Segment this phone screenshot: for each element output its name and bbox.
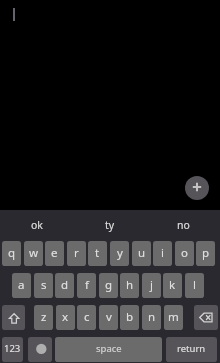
button[interactable]: ok (0, 210, 73, 241)
button[interactable]: o (175, 241, 194, 266)
staticText: x (62, 309, 69, 325)
button[interactable]: m (164, 305, 183, 330)
button[interactable]: Emoji (28, 337, 52, 362)
button[interactable]: e (45, 241, 64, 266)
staticText: i (161, 245, 164, 261)
staticText: ok (31, 218, 43, 232)
staticText: f (85, 277, 89, 293)
staticText: s (41, 277, 47, 293)
staticText: space (96, 342, 122, 355)
button[interactable]: y (110, 241, 129, 266)
button[interactable]: return (166, 337, 217, 362)
button[interactable]: Shift (2, 305, 25, 330)
button[interactable]: d (55, 273, 74, 298)
button[interactable]: q (2, 241, 21, 266)
button[interactable]: p (196, 241, 215, 266)
staticText: t (95, 245, 100, 261)
button[interactable]: j (142, 273, 161, 298)
staticText: u (138, 245, 146, 261)
button[interactable]: g (99, 273, 118, 298)
staticText: p (202, 245, 210, 261)
staticText: g (105, 277, 113, 293)
button[interactable]: no (147, 210, 220, 241)
staticText: ty (105, 218, 115, 232)
staticText: no (177, 218, 190, 232)
button[interactable]: f (77, 273, 96, 298)
button[interactable]: l (185, 273, 204, 298)
staticText: w (29, 245, 39, 261)
button[interactable]: s (34, 273, 53, 298)
staticText: c (84, 309, 90, 325)
staticText: z (41, 309, 47, 325)
button[interactable]: z (34, 305, 53, 330)
staticText: m (168, 309, 179, 325)
staticText: 123 (4, 342, 21, 355)
button[interactable]: i (153, 241, 172, 266)
button[interactable]: w (24, 241, 43, 266)
button[interactable]: h (120, 273, 139, 298)
staticText: d (61, 277, 69, 293)
button[interactable]: n (142, 305, 161, 330)
button[interactable]: u (132, 241, 151, 266)
button[interactable]: c (77, 305, 96, 330)
staticText: k (169, 277, 176, 293)
button[interactable]: 123 (2, 337, 23, 362)
button[interactable]: a (12, 273, 31, 298)
button[interactable]: ty (73, 210, 146, 241)
button[interactable]: r (67, 241, 86, 266)
button[interactable]: k (163, 273, 182, 298)
staticText: r (74, 245, 79, 261)
staticText: a (18, 277, 25, 293)
staticText: e (51, 245, 58, 261)
staticText: v (106, 309, 112, 325)
staticText: y (117, 245, 123, 261)
button[interactable]: Backspace (194, 305, 218, 330)
button[interactable]: t (88, 241, 107, 266)
staticText: return (177, 342, 206, 355)
staticText: b (126, 309, 134, 325)
staticText: j (150, 277, 153, 293)
button[interactable]: v (99, 305, 118, 330)
button[interactable]: b (120, 305, 139, 330)
staticText: l (193, 277, 196, 293)
staticText: n (148, 309, 156, 325)
staticText: q (8, 245, 16, 261)
button[interactable]: x (56, 305, 75, 330)
staticText: o (181, 245, 188, 261)
button[interactable]: Add (185, 176, 209, 200)
button[interactable]: space (55, 337, 162, 362)
staticText: h (126, 277, 134, 293)
